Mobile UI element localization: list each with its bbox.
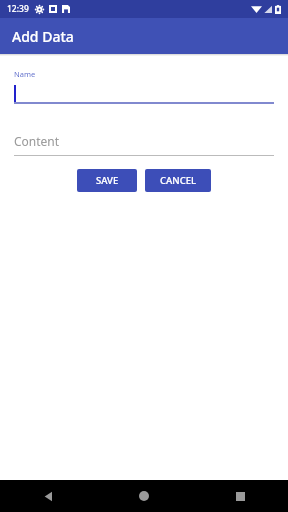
- button[interactable]: CANCEL: [145, 169, 211, 192]
- staticText: SAVE: [96, 174, 119, 187]
- button[interactable]: SAVE: [77, 169, 137, 192]
- staticText: Add Data: [12, 27, 74, 46]
- staticText: 12:39: [7, 3, 29, 15]
- staticText: Content: [14, 133, 60, 149]
- button[interactable]: Name: [0, 69, 288, 104]
- staticText: Name: [14, 69, 36, 79]
- button[interactable]: Content: [0, 131, 288, 156]
- button[interactable]: Back: [0, 480, 96, 512]
- button[interactable]: Recent apps: [192, 480, 288, 512]
- staticText: CANCEL: [160, 174, 197, 187]
- button[interactable]: Home: [96, 480, 192, 512]
